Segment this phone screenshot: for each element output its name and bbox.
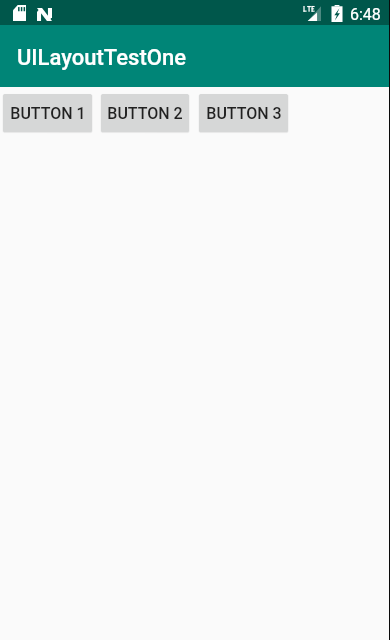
staticText: BUTTON 1 (10, 104, 86, 123)
button[interactable]: BUTTON 3 (199, 94, 288, 132)
staticText: BUTTON 2 (107, 104, 183, 123)
staticText: 6:48 (350, 5, 381, 24)
button[interactable]: BUTTON 2 (101, 94, 189, 132)
button[interactable]: BUTTON 1 (3, 94, 92, 132)
staticText: BUTTON 3 (206, 104, 282, 123)
other: Battery charging (331, 5, 343, 22)
staticText: UILayoutTestOne (17, 45, 186, 71)
other: SD card (13, 5, 26, 21)
other: LTE signal strength (303, 5, 321, 21)
other: Android N (37, 8, 52, 21)
